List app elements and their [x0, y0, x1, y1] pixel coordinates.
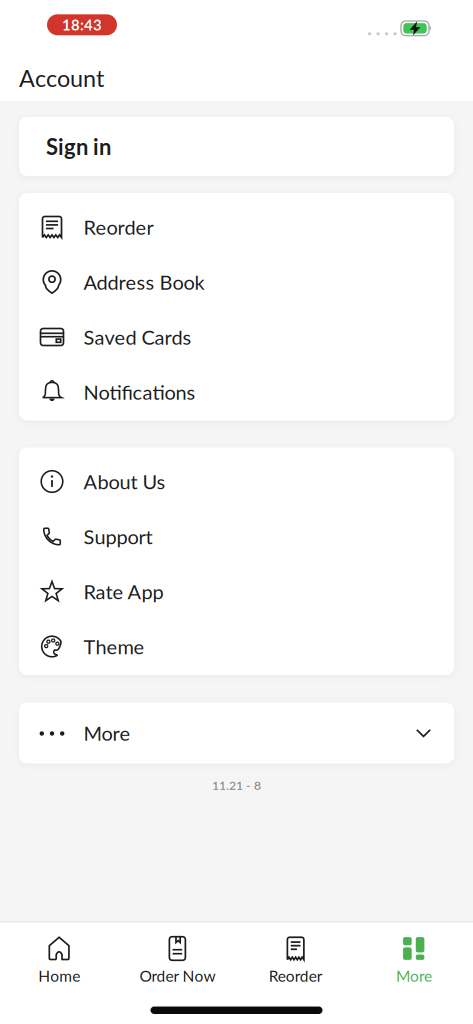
- button[interactable]: More: [19, 702, 454, 763]
- staticText: Rate App: [83, 579, 163, 603]
- button[interactable]: Support: [19, 509, 454, 564]
- staticText: Home: [38, 966, 80, 985]
- staticText: Sign in: [46, 133, 111, 160]
- staticText: Notifications: [83, 380, 195, 404]
- button[interactable]: Address Book: [19, 254, 454, 309]
- button[interactable]: Reorder: [19, 199, 454, 254]
- staticText: Theme: [83, 634, 144, 658]
- staticText: More: [83, 721, 130, 745]
- button[interactable]: Notifications: [19, 364, 454, 419]
- staticText: Reorder: [83, 215, 153, 239]
- button[interactable]: About Us: [19, 454, 454, 509]
- button[interactable]: Sign in: [19, 117, 454, 176]
- staticText: Reorder: [269, 966, 323, 985]
- button[interactable]: Saved Cards: [19, 309, 454, 364]
- staticText: Support: [83, 524, 152, 548]
- staticText: Order Now: [139, 966, 215, 985]
- staticText: Account: [19, 64, 104, 92]
- button[interactable]: Home: [0, 935, 118, 985]
- staticText: About Us: [83, 469, 165, 493]
- button[interactable]: Rate App: [19, 564, 454, 619]
- staticText: Saved Cards: [83, 325, 191, 349]
- staticText: Address Book: [83, 270, 204, 294]
- button[interactable]: Reorder: [236, 935, 355, 985]
- button[interactable]: Theme: [19, 619, 454, 674]
- staticText: More: [396, 966, 432, 985]
- staticText: 11.21 - 8: [212, 777, 261, 792]
- staticText: 18:43: [62, 16, 102, 34]
- button[interactable]: Order Now: [118, 935, 236, 985]
- button[interactable]: More: [355, 935, 473, 985]
